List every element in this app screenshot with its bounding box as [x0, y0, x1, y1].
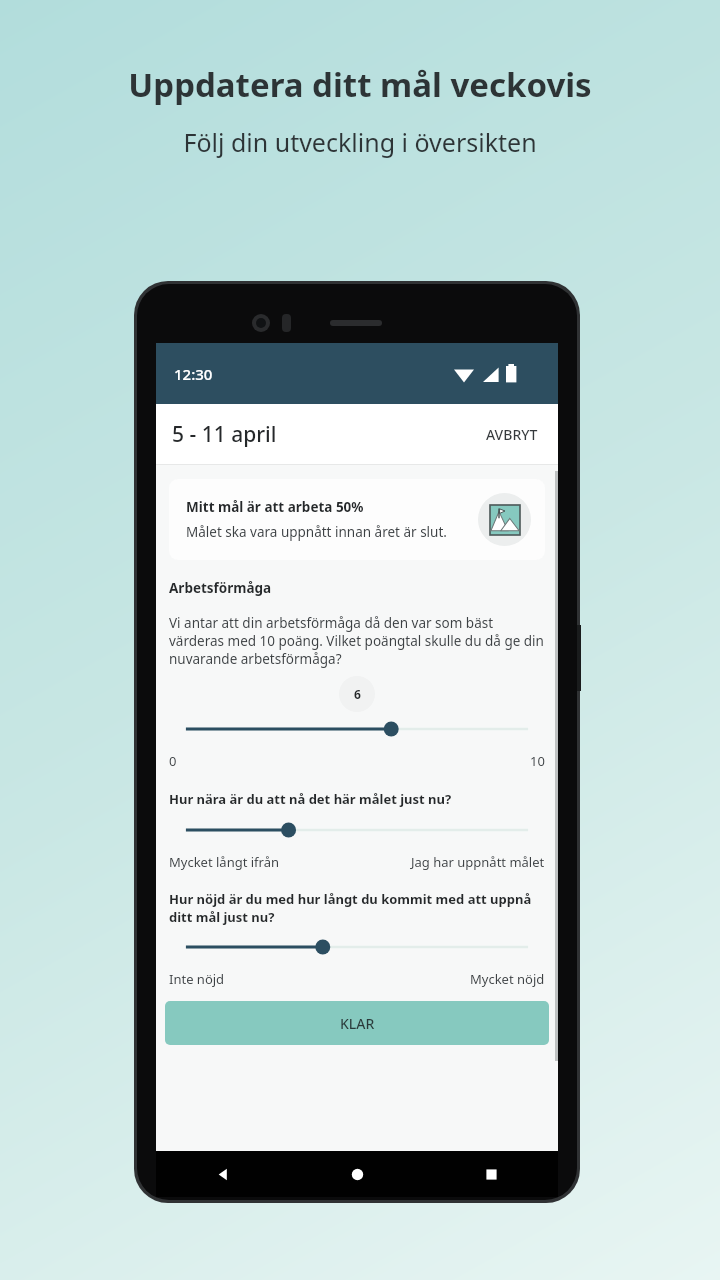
button[interactable]: Mitt mål är att arbeta 50%	[169, 479, 545, 560]
button[interactable]: KLAR	[165, 1001, 549, 1045]
staticText: Uppdatera ditt mål veckovis	[128, 62, 592, 107]
button[interactable]: Recents	[424, 1151, 558, 1197]
staticText: Vi antar att din arbetsförmåga då den va…	[169, 614, 545, 668]
staticText: Hur nöjd är du med hur långt du kommit m…	[169, 890, 545, 926]
staticText: Mycket nöjd	[470, 970, 545, 988]
button[interactable]: Home	[290, 1151, 424, 1197]
staticText: 6	[354, 686, 361, 702]
staticText: Mycket långt ifrån	[169, 853, 280, 871]
staticText: KLAR	[340, 1014, 375, 1033]
staticText: AVBRYT	[486, 425, 538, 444]
button[interactable]: Back	[156, 1151, 290, 1197]
button[interactable]: AVBRYT	[482, 417, 542, 452]
button[interactable]	[169, 819, 545, 841]
button[interactable]	[169, 718, 545, 740]
staticText: 10	[530, 752, 545, 770]
staticText: Följ din utveckling i översikten	[183, 125, 537, 159]
staticText: Hur nära är du att nå det här målet just…	[169, 790, 452, 808]
button[interactable]	[169, 936, 545, 958]
staticText: 5 - 11 april	[172, 420, 277, 449]
staticText: Målet ska vara uppnått innan året är slu…	[186, 523, 447, 541]
staticText: 12:30	[174, 364, 213, 384]
staticText: 0	[169, 752, 177, 770]
staticText: Arbetsförmåga	[169, 579, 272, 597]
staticText: Jag har uppnått målet	[411, 853, 545, 871]
staticText: Inte nöjd	[169, 970, 225, 988]
staticText: Mitt mål är att arbeta 50%	[186, 498, 364, 516]
